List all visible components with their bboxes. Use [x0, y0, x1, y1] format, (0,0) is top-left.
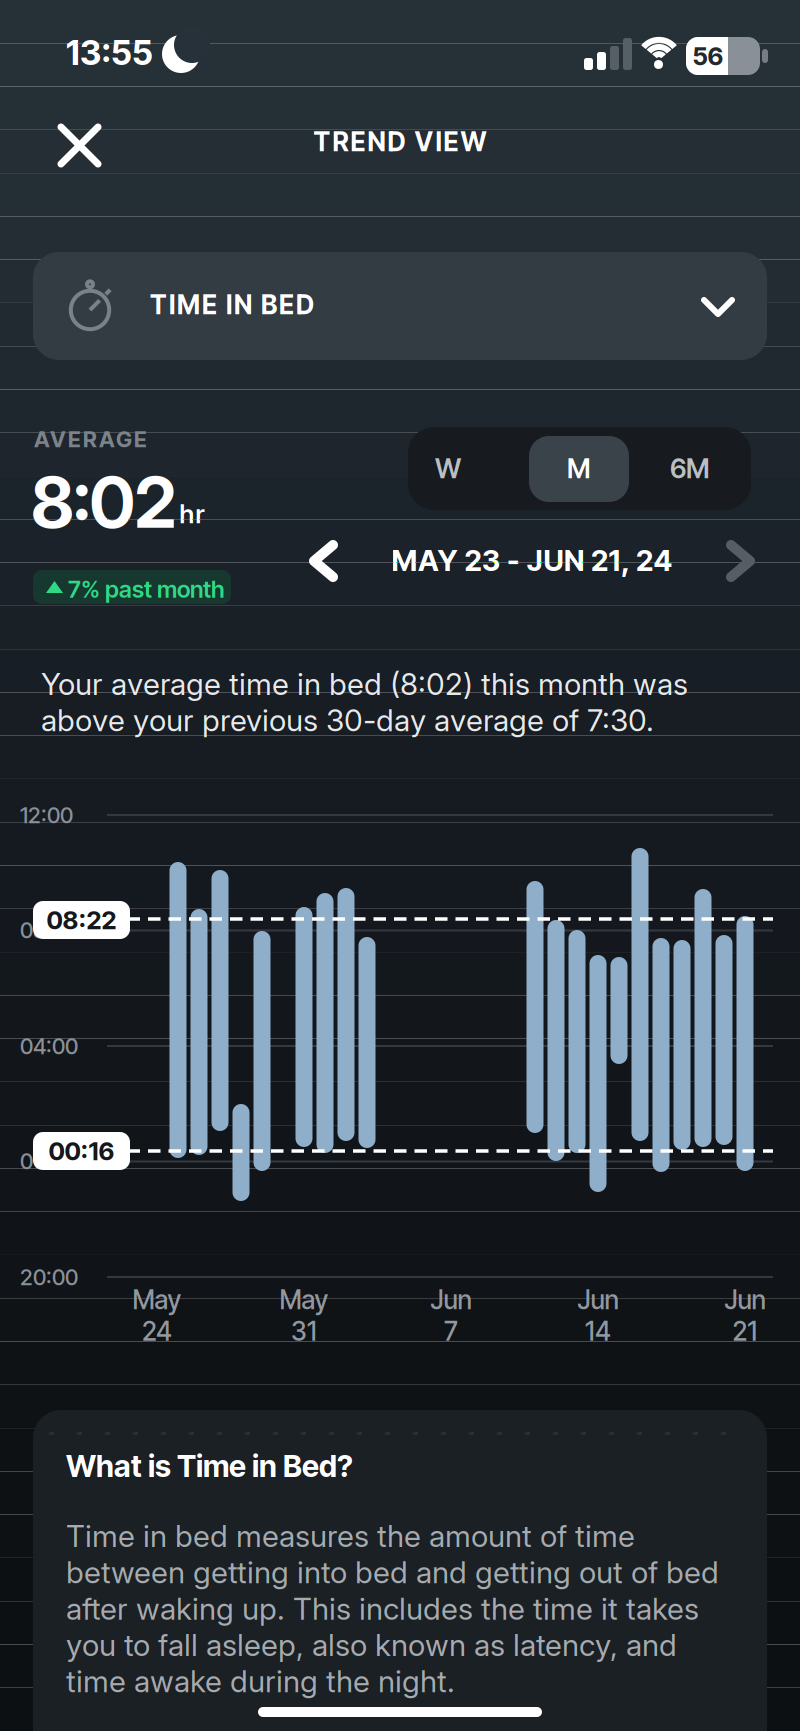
staticText: AVERAGE: [34, 426, 147, 453]
staticText: after waking up. This includes the time …: [66, 1591, 699, 1627]
staticText: 04:00: [20, 1033, 78, 1060]
button[interactable]: M: [529, 427, 629, 510]
staticText: 14: [585, 1315, 611, 1347]
button[interactable]: Close: [49, 115, 110, 176]
staticText: 6M: [670, 452, 710, 485]
staticText: between getting into bed and getting out…: [66, 1554, 719, 1591]
staticText: May: [132, 1284, 181, 1315]
staticText: 08:00: [20, 917, 78, 944]
staticText: 20:00: [20, 1264, 78, 1291]
staticText: 31: [291, 1315, 317, 1347]
staticText: Your average time in bed (8:02) this mon…: [41, 666, 688, 702]
staticText: 7% past month: [68, 575, 225, 603]
staticText: hr: [179, 498, 205, 529]
staticText: 24: [142, 1315, 172, 1347]
staticText: 8:02: [31, 460, 177, 545]
staticText: TIME IN BED: [150, 289, 314, 320]
staticText: M: [567, 452, 591, 485]
staticText: Jun: [577, 1284, 618, 1315]
staticText: W: [435, 452, 461, 485]
staticText: Jun: [430, 1284, 471, 1315]
staticText: TREND VIEW: [313, 126, 486, 157]
staticText: Time in bed measures the amount of time: [66, 1518, 635, 1554]
button[interactable]: W: [398, 427, 498, 510]
staticText: MAY 23 - JUN 21, 24: [391, 543, 672, 578]
staticText: 21: [732, 1315, 757, 1347]
staticText: 08:22: [46, 905, 116, 935]
staticText: time awake during the night.: [66, 1663, 455, 1699]
staticText: 00:00: [20, 1148, 78, 1175]
button[interactable]: Next period: [723, 537, 758, 585]
staticText: 7: [444, 1315, 458, 1347]
button[interactable]: Previous period: [306, 537, 341, 585]
button[interactable]: 6M: [640, 427, 740, 510]
button[interactable]: TIME IN BED: [33, 252, 767, 360]
staticText: May: [279, 1284, 328, 1315]
staticText: 00:16: [48, 1136, 114, 1166]
staticText: 12:00: [20, 802, 73, 829]
staticText: Jun: [724, 1284, 765, 1315]
staticText: What is Time in Bed?: [66, 1448, 353, 1484]
staticText: above your previous 30-day average of 7:…: [41, 702, 654, 739]
staticText: 13:55: [66, 32, 153, 73]
staticText: 56: [692, 41, 723, 71]
staticText: you to fall asleep, also known as latenc…: [66, 1627, 677, 1663]
